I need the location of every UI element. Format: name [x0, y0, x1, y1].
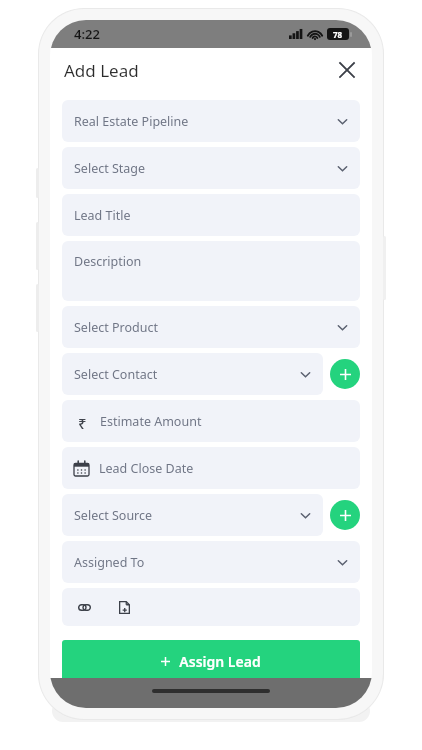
- staticText: Real Estate Pipeline: [74, 113, 337, 130]
- button[interactable]: Real Estate Pipeline: [62, 100, 360, 142]
- staticText: Select Stage: [74, 160, 337, 177]
- button[interactable]: Assigned To: [62, 541, 360, 583]
- staticText: Select Product: [74, 319, 337, 336]
- staticText: Assigned To: [74, 554, 337, 571]
- button[interactable]: ₹: [62, 400, 360, 442]
- staticText: Assign Lead: [179, 652, 261, 671]
- button[interactable]: Add Select Source: [330, 500, 360, 530]
- button[interactable]: Close: [330, 53, 364, 87]
- button[interactable]: Assign Lead: [62, 640, 360, 682]
- button[interactable]: Lead Close Date: [62, 447, 360, 489]
- button[interactable]: Attach file: [114, 597, 134, 617]
- staticText: Lead Title: [74, 207, 348, 224]
- button[interactable]: Description: [62, 241, 360, 301]
- button[interactable]: Select Source: [62, 494, 323, 536]
- staticText: 78: [333, 29, 343, 40]
- staticText: Select Contact: [74, 366, 300, 383]
- staticText: Description: [74, 253, 142, 270]
- staticText: 4:22: [74, 25, 100, 43]
- button[interactable]: Attach link: [74, 597, 94, 617]
- staticText: Select Source: [74, 507, 300, 524]
- button[interactable]: Lead Title: [62, 194, 360, 236]
- staticText: ₹: [78, 413, 87, 429]
- button[interactable]: Select Stage: [62, 147, 360, 189]
- button[interactable]: Add Select Contact: [330, 359, 360, 389]
- staticText: Lead Close Date: [99, 460, 348, 477]
- button[interactable]: Select Contact: [62, 353, 323, 395]
- staticText: Add Lead: [64, 59, 139, 82]
- staticText: Estimate Amount: [100, 413, 348, 430]
- button[interactable]: Select Product: [62, 306, 360, 348]
